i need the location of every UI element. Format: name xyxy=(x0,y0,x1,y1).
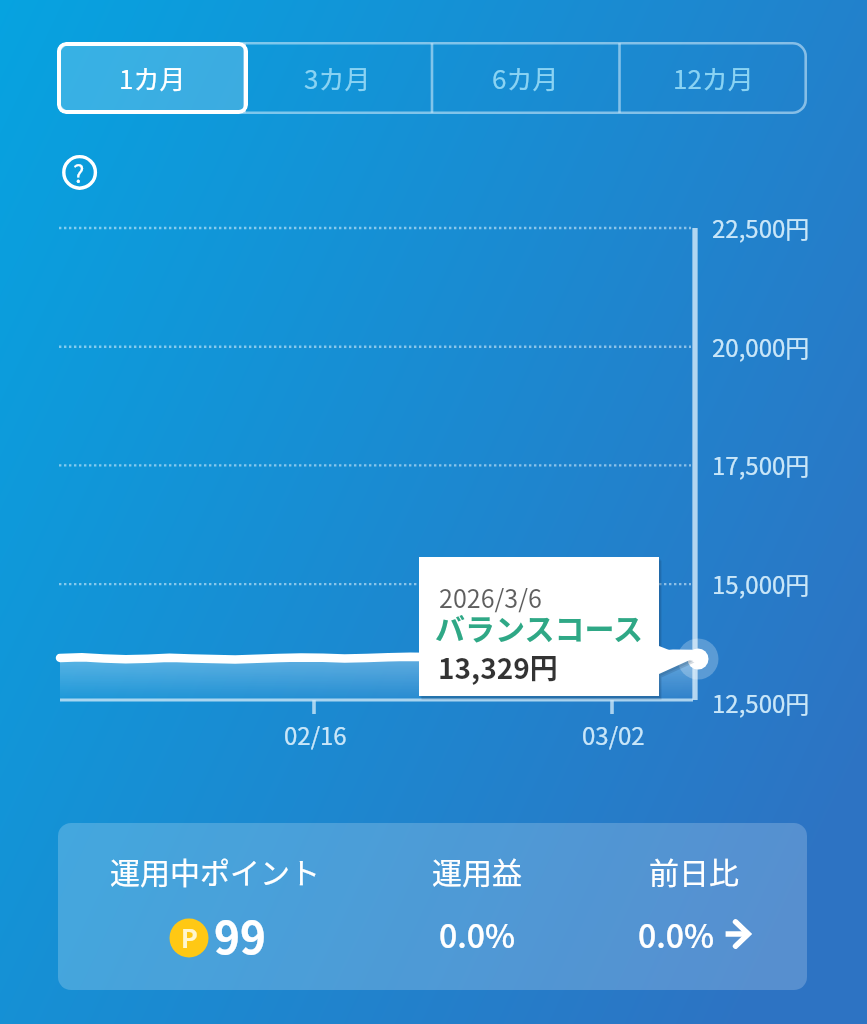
button[interactable] xyxy=(57,42,244,114)
staticText: 0.0% xyxy=(638,911,715,957)
staticText: 99 xyxy=(214,903,266,967)
staticText: 12,500円 xyxy=(712,685,810,720)
staticText: 17,500円 xyxy=(712,447,810,482)
button[interactable]: Help xyxy=(58,151,101,194)
staticText: バランスコース xyxy=(435,605,643,648)
staticText: 03/02 xyxy=(582,717,645,752)
staticText: P xyxy=(181,919,198,955)
button[interactable]: 1カ月 xyxy=(57,42,248,114)
staticText: 2026/3/6 xyxy=(439,579,542,615)
staticText: 前日比 xyxy=(649,849,739,892)
staticText: 13,329円 xyxy=(438,647,558,688)
staticText: ? xyxy=(73,155,85,190)
staticText: 6カ月 xyxy=(492,59,559,97)
staticText: 02/16 xyxy=(284,717,347,752)
button[interactable]: 運用中ポイント xyxy=(58,823,807,990)
staticText: 22,500円 xyxy=(712,210,810,245)
staticText: 12カ月 xyxy=(673,59,754,97)
staticText: 3カ月 xyxy=(304,59,371,97)
staticText: 運用中ポイント xyxy=(110,849,320,892)
staticText: 0.0% xyxy=(439,911,516,957)
staticText: 15,000円 xyxy=(712,566,810,601)
staticText: 20,000円 xyxy=(712,329,810,364)
button[interactable]: 6カ月 xyxy=(431,42,619,114)
button[interactable]: 3カ月 xyxy=(244,42,431,114)
staticText: 1カ月 xyxy=(119,59,186,97)
staticText: 運用益 xyxy=(432,849,522,892)
button[interactable]: 12カ月 xyxy=(619,42,807,114)
